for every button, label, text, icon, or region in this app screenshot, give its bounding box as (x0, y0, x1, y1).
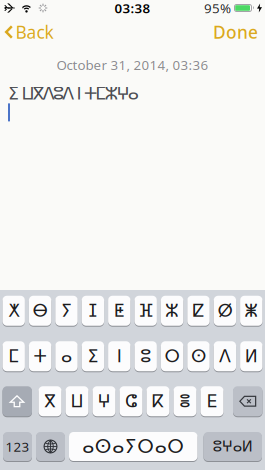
staticText: October 31, 2014, 03:36 (56, 56, 208, 74)
button[interactable]: ⵥ (240, 295, 262, 326)
staticText: ⵔ (165, 346, 180, 366)
staticText: ⵢ (61, 301, 72, 321)
button[interactable]: ⵡ (65, 386, 88, 417)
button[interactable]: ⴱ (29, 295, 51, 326)
button[interactable]: ⴹ (200, 386, 223, 417)
button[interactable]: ⵉ (82, 341, 104, 372)
button[interactable]: Back (0, 20, 53, 43)
staticText: ⴹ (206, 391, 217, 411)
staticText: Done (213, 20, 258, 43)
staticText: ⵓⵖⴰⵍ (213, 438, 253, 455)
button[interactable]: Done (213, 20, 265, 43)
staticText: ⴱ (33, 301, 48, 321)
button[interactable]: ⵢ (55, 295, 78, 326)
button[interactable]: ⵛ (119, 386, 142, 417)
staticText: ⵁ (217, 301, 232, 321)
staticText: ⵍ (245, 346, 258, 366)
button[interactable]: ⵁ (214, 295, 236, 326)
staticText: ⴷ (219, 346, 231, 366)
staticText: ⴳ (44, 391, 56, 411)
button[interactable]: ⴷ (214, 341, 236, 372)
staticText: ⵜ (34, 346, 47, 366)
button[interactable]: ⵙ (187, 341, 210, 372)
staticText: ⵊ (88, 301, 97, 321)
staticText: Back (15, 20, 53, 43)
staticText: ⵟ (114, 301, 125, 321)
button[interactable]: ⵎ (2, 341, 25, 372)
button[interactable]: 123 (3, 431, 32, 461)
staticText: ⵙ (191, 346, 206, 366)
button[interactable]: ⴰⵙⴰⵢⵔⴰⵔ (69, 431, 197, 461)
button[interactable]: ⵖ (92, 386, 115, 417)
button[interactable]: ⴻ (173, 386, 196, 417)
staticText: ⴻ (179, 391, 191, 411)
button[interactable]: ⵇ (187, 295, 210, 326)
staticText: ⵛ (125, 391, 137, 411)
staticText: ⵉ ⵡⴳⴷⵓⴷ ⵏ ⵜⵎⵣⵖⴰ (8, 84, 139, 103)
staticText: 03:38 (114, 0, 150, 17)
button[interactable]: ⵍ (240, 341, 262, 372)
button[interactable] (2, 386, 32, 417)
staticText: ⴽ (152, 391, 164, 411)
staticText: ⵣ (165, 301, 179, 321)
staticText: ⵏ (117, 346, 122, 366)
button[interactable] (233, 386, 262, 417)
staticText: ⵥ (244, 301, 258, 321)
staticText: ⵎ (8, 346, 19, 366)
button[interactable]: ⵏ (108, 341, 130, 372)
button[interactable]: ⵔ (161, 341, 183, 372)
button[interactable]: ⵓⵖⴰⵍ (203, 431, 262, 461)
staticText: ⵓ (140, 346, 151, 366)
button[interactable]: ⵓ (134, 341, 157, 372)
staticText: ⵡ (70, 391, 83, 411)
button[interactable]: ⵅ (2, 295, 25, 326)
staticText: 95% (204, 0, 231, 17)
staticText: ⵇ (192, 301, 204, 321)
staticText: ⵅ (8, 301, 19, 321)
button[interactable] (36, 431, 65, 461)
staticText: ⵖ (97, 391, 110, 411)
button[interactable]: ⵟ (108, 295, 130, 326)
staticText: ⴰⵙⴰⵢⵔⴰⵔ (82, 436, 184, 457)
staticText: ⴼ (138, 301, 153, 321)
button[interactable]: ⵜ (29, 341, 51, 372)
button[interactable]: ⵣ (161, 295, 183, 326)
button[interactable]: ⵊ (82, 295, 104, 326)
button[interactable]: ⴼ (134, 295, 157, 326)
button[interactable]: ⴰ (55, 341, 78, 372)
button[interactable]: ⴽ (146, 386, 169, 417)
button[interactable]: ⴳ (38, 386, 61, 417)
staticText: 123 (5, 438, 29, 455)
staticText: ⵉ (87, 346, 98, 366)
staticText: ⴰ (61, 346, 72, 366)
